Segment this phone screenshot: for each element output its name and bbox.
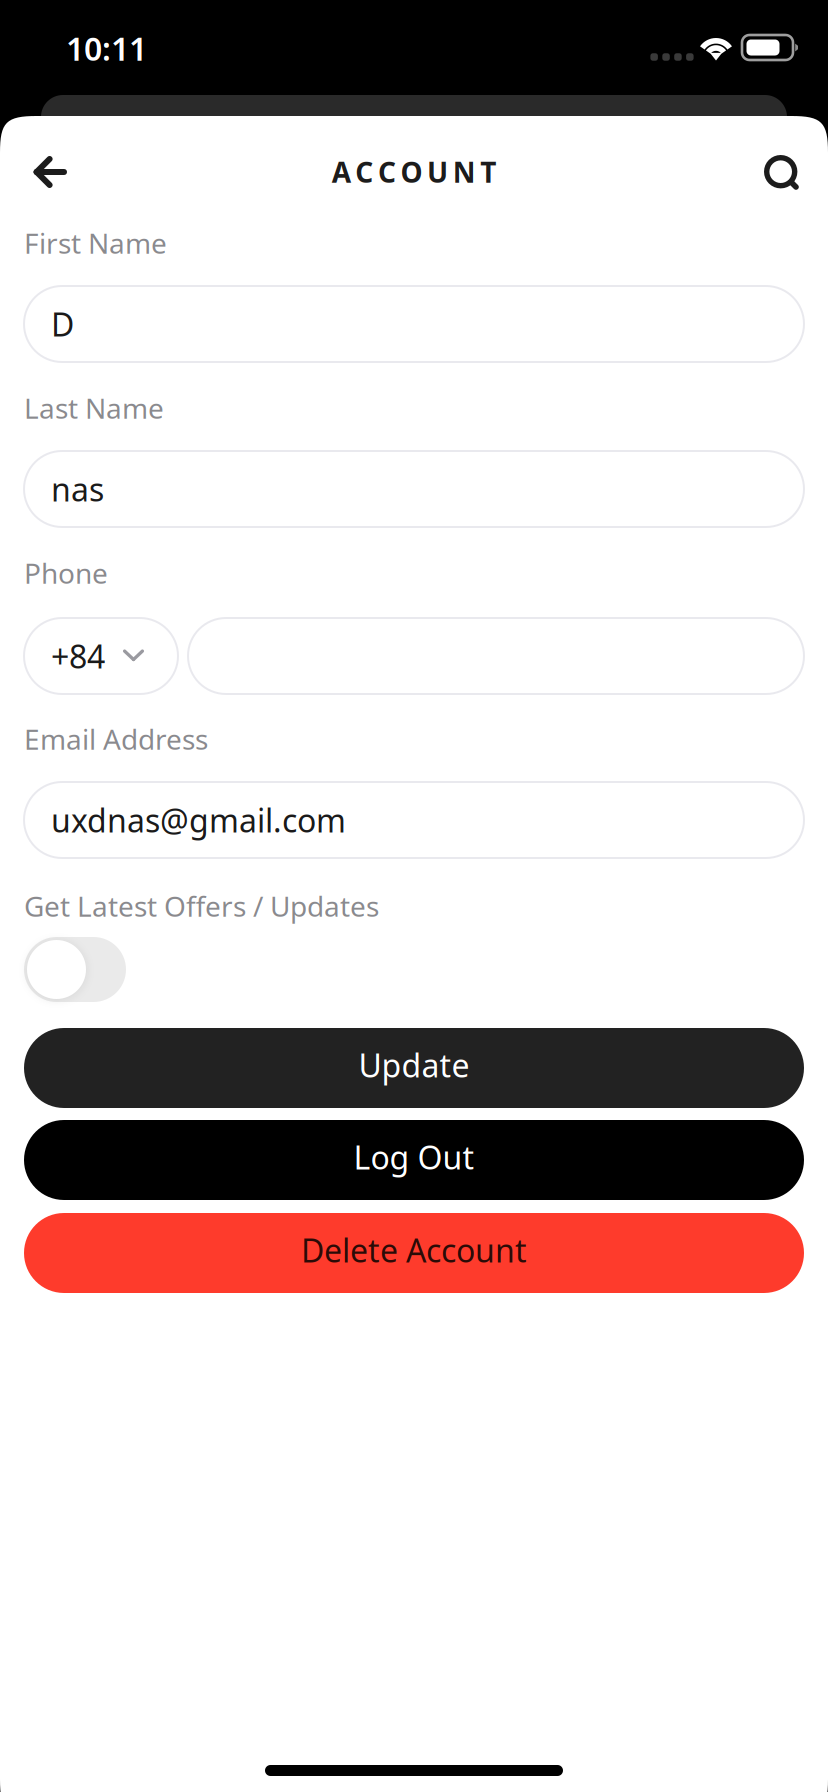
staticText: U	[427, 153, 448, 191]
staticText: C	[355, 153, 373, 191]
staticText: Phone	[24, 554, 108, 592]
staticText: +84	[51, 635, 105, 677]
staticText: D	[51, 303, 74, 345]
staticText: Email Address	[24, 720, 208, 758]
button[interactable]: Country code +84	[24, 618, 178, 694]
button[interactable]: Delete Account	[24, 1213, 804, 1293]
staticText: Log Out	[353, 1136, 474, 1178]
staticText: C	[378, 153, 396, 191]
staticText: Get Latest Offers / Updates	[24, 887, 379, 925]
button[interactable]: Get Latest Offers / Updates	[24, 937, 126, 1002]
staticText: T	[480, 153, 496, 191]
staticText: Last Name	[24, 389, 164, 427]
staticText: 10:11	[66, 27, 147, 69]
staticText: Update	[358, 1044, 469, 1086]
staticText: First Name	[24, 224, 167, 262]
staticText: uxdnas@gmail.com	[51, 799, 346, 841]
button[interactable]: Log Out	[24, 1120, 804, 1200]
button[interactable]: Search	[764, 155, 798, 189]
button[interactable]: Update	[24, 1028, 804, 1108]
staticText: nas	[51, 468, 104, 510]
staticText: Delete Account	[301, 1229, 527, 1271]
button[interactable]: Back	[34, 157, 66, 187]
staticText: N	[453, 153, 476, 191]
staticText: O	[400, 153, 422, 191]
staticText: A	[332, 153, 351, 191]
